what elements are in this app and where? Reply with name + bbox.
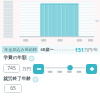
staticText: 年金見込み受給額: [4, 47, 37, 52]
button[interactable]: 減らす: [33, 64, 44, 74]
staticText: 就労終了年齢: [3, 76, 31, 82]
staticText: 151: [75, 46, 84, 53]
button[interactable]: 年金見込み受給額: [2, 46, 38, 53]
button[interactable]: 増やす: [86, 64, 97, 74]
staticText: 万円: [22, 66, 31, 71]
button[interactable]: 65: [4, 84, 22, 93]
staticText: 68歳〜: [40, 47, 54, 53]
staticText: 万円/年: [84, 47, 98, 52]
staticText: 学費の年額: [3, 55, 27, 61]
button[interactable]: [44, 63, 86, 75]
staticText: 65: [10, 85, 16, 92]
button[interactable]: ヘルプ: [29, 56, 34, 61]
staticText: 745: [7, 65, 16, 72]
button[interactable]: 745: [3, 64, 20, 73]
button[interactable]: ヘルプ: [33, 77, 38, 82]
